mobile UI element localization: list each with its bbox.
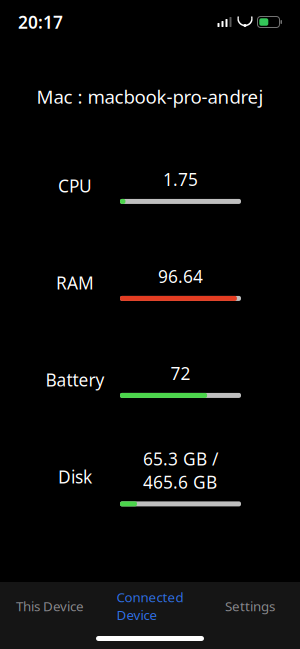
staticText: 20:17: [18, 10, 63, 33]
staticText: CPU: [58, 174, 92, 197]
staticText: Settings: [225, 597, 275, 615]
button[interactable]: Settings: [200, 582, 300, 630]
staticText: 72: [170, 362, 190, 385]
button[interactable]: Connected Device: [100, 582, 200, 630]
staticText: 1.75: [163, 168, 198, 191]
staticText: Battery: [45, 368, 104, 391]
staticText: 65.3 GB / 465.6 GB: [143, 447, 218, 493]
staticText: Mac : macbook-pro-andrej: [36, 84, 263, 109]
staticText: This Device: [16, 597, 84, 615]
staticText: Connected Device: [116, 588, 183, 624]
staticText: RAM: [56, 271, 94, 294]
staticText: 96.64: [158, 265, 203, 288]
staticText: Disk: [58, 465, 92, 488]
button[interactable]: This Device: [0, 582, 100, 630]
